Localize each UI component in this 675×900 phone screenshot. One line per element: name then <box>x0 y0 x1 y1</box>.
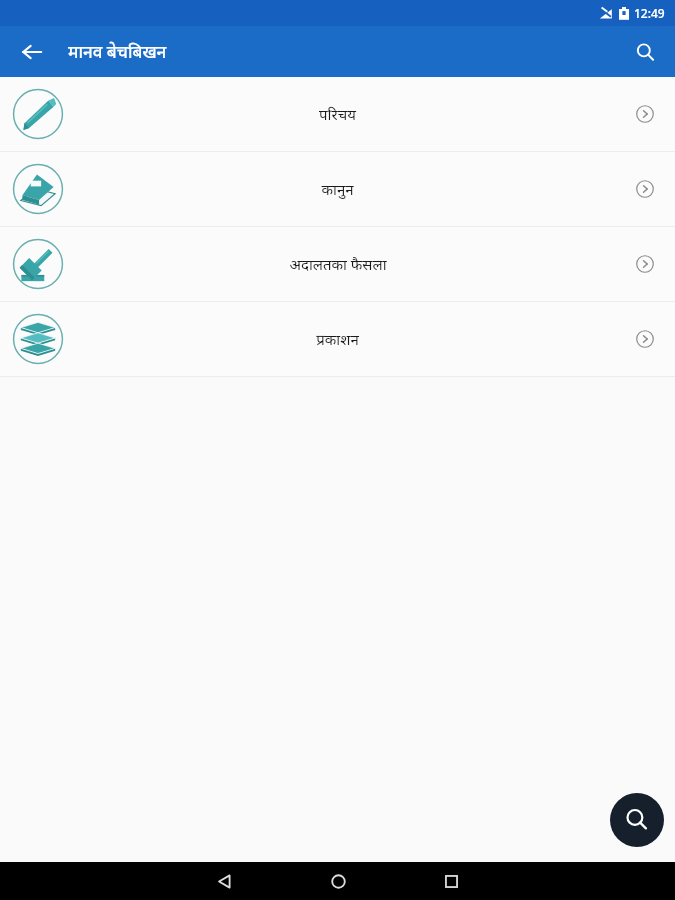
staticText: अदालतका फैसला <box>289 254 387 274</box>
staticText: परिचय <box>319 104 356 124</box>
button[interactable]: Search <box>610 793 664 847</box>
button[interactable]: Recent apps <box>432 862 470 900</box>
button[interactable]: Search <box>623 30 667 74</box>
button[interactable]: Home <box>319 862 357 900</box>
button[interactable]: परिचय <box>0 77 675 151</box>
staticText: मानव बेचबिखन <box>68 40 167 63</box>
button[interactable]: कानुन <box>0 152 675 226</box>
staticText: कानुन <box>321 179 354 199</box>
staticText: 12:49 <box>634 5 665 21</box>
staticText: प्रकाशन <box>316 329 359 349</box>
button[interactable]: अदालतका फैसला <box>0 227 675 301</box>
button[interactable]: Back <box>10 30 54 74</box>
button[interactable]: Back <box>205 862 243 900</box>
button[interactable]: प्रकाशन <box>0 302 675 376</box>
